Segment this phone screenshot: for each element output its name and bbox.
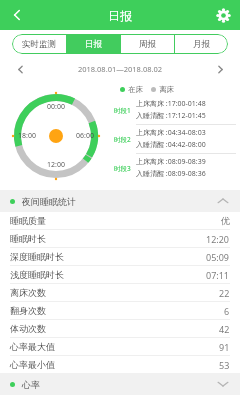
staticText: 入睡清醒 :17:12-01:45: [136, 111, 206, 121]
button[interactable]: 睡眠时长: [10, 230, 230, 247]
staticText: 时段1: [114, 106, 136, 115]
button[interactable]: 心率: [0, 373, 240, 395]
button[interactable]: 夜间睡眠统计: [0, 190, 240, 212]
staticText: 夜间睡眠统计: [22, 196, 76, 207]
staticText: 42: [219, 323, 230, 335]
staticText: 上床离床 :17:00-01:48: [136, 99, 206, 109]
staticText: 离床: [159, 85, 174, 94]
button[interactable]: 心率最大值: [10, 338, 230, 355]
button[interactable]: 深度睡眠时长: [10, 248, 230, 265]
staticText: 时段3: [114, 164, 136, 173]
staticText: 睡眠时长: [10, 233, 46, 244]
staticText: 入睡清醒 :08:09-08:36: [136, 169, 206, 179]
button[interactable]: 月报: [175, 34, 228, 54]
button[interactable]: Back: [0, 0, 34, 30]
staticText: 00:00: [47, 102, 65, 112]
staticText: 实时监测: [22, 39, 56, 50]
button[interactable]: 翻身次数: [10, 302, 230, 319]
staticText: 05:09: [206, 251, 230, 263]
staticText: 6: [224, 305, 230, 317]
staticText: 07:11: [206, 269, 230, 281]
button[interactable]: 周报: [121, 34, 174, 54]
staticText: 月报: [193, 39, 210, 50]
staticText: 上床离床 :04:34-08:03: [136, 128, 206, 138]
staticText: 翻身次数: [10, 305, 46, 316]
staticText: 优: [221, 215, 230, 226]
staticText: 12:20: [206, 233, 230, 245]
staticText: 体动次数: [10, 323, 46, 334]
staticText: 入睡清醒 :04:42-08:00: [136, 140, 206, 150]
staticText: 06:00: [76, 131, 94, 141]
staticText: 心率最小值: [10, 359, 55, 370]
staticText: 睡眠质量: [10, 215, 46, 226]
staticText: 53: [219, 359, 230, 371]
staticText: 离床次数: [10, 287, 46, 298]
staticText: 日报: [85, 39, 102, 50]
button[interactable]: 浅度睡眠时长: [10, 266, 230, 283]
button[interactable]: Previous: [10, 59, 30, 79]
staticText: 91: [219, 341, 230, 353]
staticText: 心率: [22, 379, 40, 390]
staticText: 日报: [108, 8, 132, 23]
button[interactable]: 日报: [67, 34, 120, 54]
staticText: 心率最大值: [10, 341, 55, 352]
staticText: 12:00: [47, 160, 65, 170]
staticText: 在床: [128, 85, 143, 94]
staticText: 浅度睡眠时长: [10, 269, 64, 280]
staticText: 22: [219, 287, 230, 299]
button[interactable]: 离床次数: [10, 284, 230, 301]
button[interactable]: Next: [210, 59, 230, 79]
button[interactable]: 实时监测: [12, 34, 66, 54]
staticText: 深度睡眠时长: [10, 251, 64, 262]
staticText: 周报: [139, 39, 156, 50]
button[interactable]: Settings: [206, 0, 240, 30]
staticText: 18:00: [18, 131, 36, 141]
staticText: 时段2: [114, 135, 136, 144]
button[interactable]: 心率最小值: [10, 356, 230, 373]
staticText: 上床离床 :08:09-08:39: [136, 157, 206, 167]
button[interactable]: 睡眠质量: [10, 212, 230, 229]
staticText: 2018.08.01—2018.08.02: [30, 64, 210, 74]
button[interactable]: 体动次数: [10, 320, 230, 337]
